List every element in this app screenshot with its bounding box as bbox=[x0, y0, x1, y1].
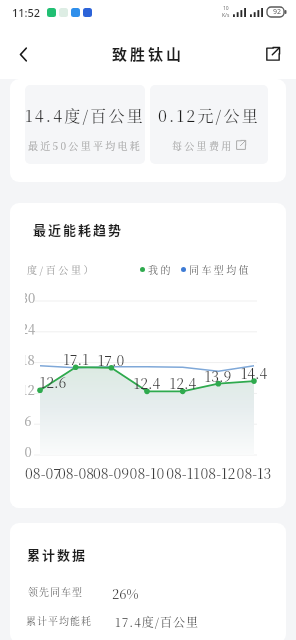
staticText: 08-07 bbox=[17, 463, 69, 483]
staticText: 0 bbox=[10, 442, 48, 461]
staticText: 度/百公里） bbox=[27, 262, 97, 276]
staticText: 92 bbox=[273, 7, 282, 17]
staticText: 我的 bbox=[148, 262, 173, 276]
staticText: 11:52 bbox=[12, 5, 41, 20]
staticText: 18 bbox=[10, 350, 48, 369]
staticText: 累计平均能耗 bbox=[26, 613, 92, 627]
staticText: 08-09 bbox=[85, 463, 137, 483]
staticText: 14.4 bbox=[230, 363, 278, 383]
staticText: 08-13 bbox=[228, 463, 280, 483]
staticText: 最近50公里平均电耗 bbox=[28, 138, 143, 152]
staticText: 最近能耗趋势 bbox=[33, 220, 124, 239]
staticText: 12.4 bbox=[123, 373, 171, 393]
staticText: 12.6 bbox=[29, 372, 77, 392]
staticText: 13.9 bbox=[194, 366, 242, 386]
staticText: 17.4度/百公里 bbox=[115, 613, 200, 630]
staticText: 12.4 bbox=[159, 373, 207, 393]
button[interactable]: 14.4度/百公里 bbox=[25, 85, 145, 164]
staticText: 08-08 bbox=[50, 463, 102, 483]
staticText: K/s bbox=[222, 12, 230, 19]
staticText: 26% bbox=[112, 584, 139, 603]
staticText: 累计数据 bbox=[27, 545, 88, 564]
staticText: 致胜钛山 bbox=[112, 43, 185, 65]
staticText: 08-11 bbox=[157, 463, 209, 483]
staticText: 6 bbox=[10, 411, 48, 430]
staticText: 17.1 bbox=[52, 349, 100, 369]
staticText: 30 bbox=[10, 288, 48, 307]
staticText: 领先同车型 bbox=[28, 584, 83, 598]
staticText: 17.0 bbox=[87, 350, 135, 370]
staticText: 同车型均值 bbox=[189, 262, 251, 276]
staticText: 08-10 bbox=[121, 463, 173, 483]
staticText: 每公里费用 bbox=[172, 138, 234, 152]
staticText: 08-12 bbox=[192, 463, 244, 483]
staticText: 0.12元/公里 bbox=[158, 104, 260, 127]
staticText: 24 bbox=[10, 319, 48, 338]
staticText: 12 bbox=[10, 380, 48, 399]
button[interactable]: Back bbox=[8, 39, 38, 69]
button[interactable]: Share bbox=[258, 39, 288, 69]
staticText: 10 bbox=[223, 5, 229, 12]
staticText: 14.4度/百公里 bbox=[25, 104, 145, 127]
button[interactable]: 0.12元/公里 bbox=[150, 85, 268, 164]
